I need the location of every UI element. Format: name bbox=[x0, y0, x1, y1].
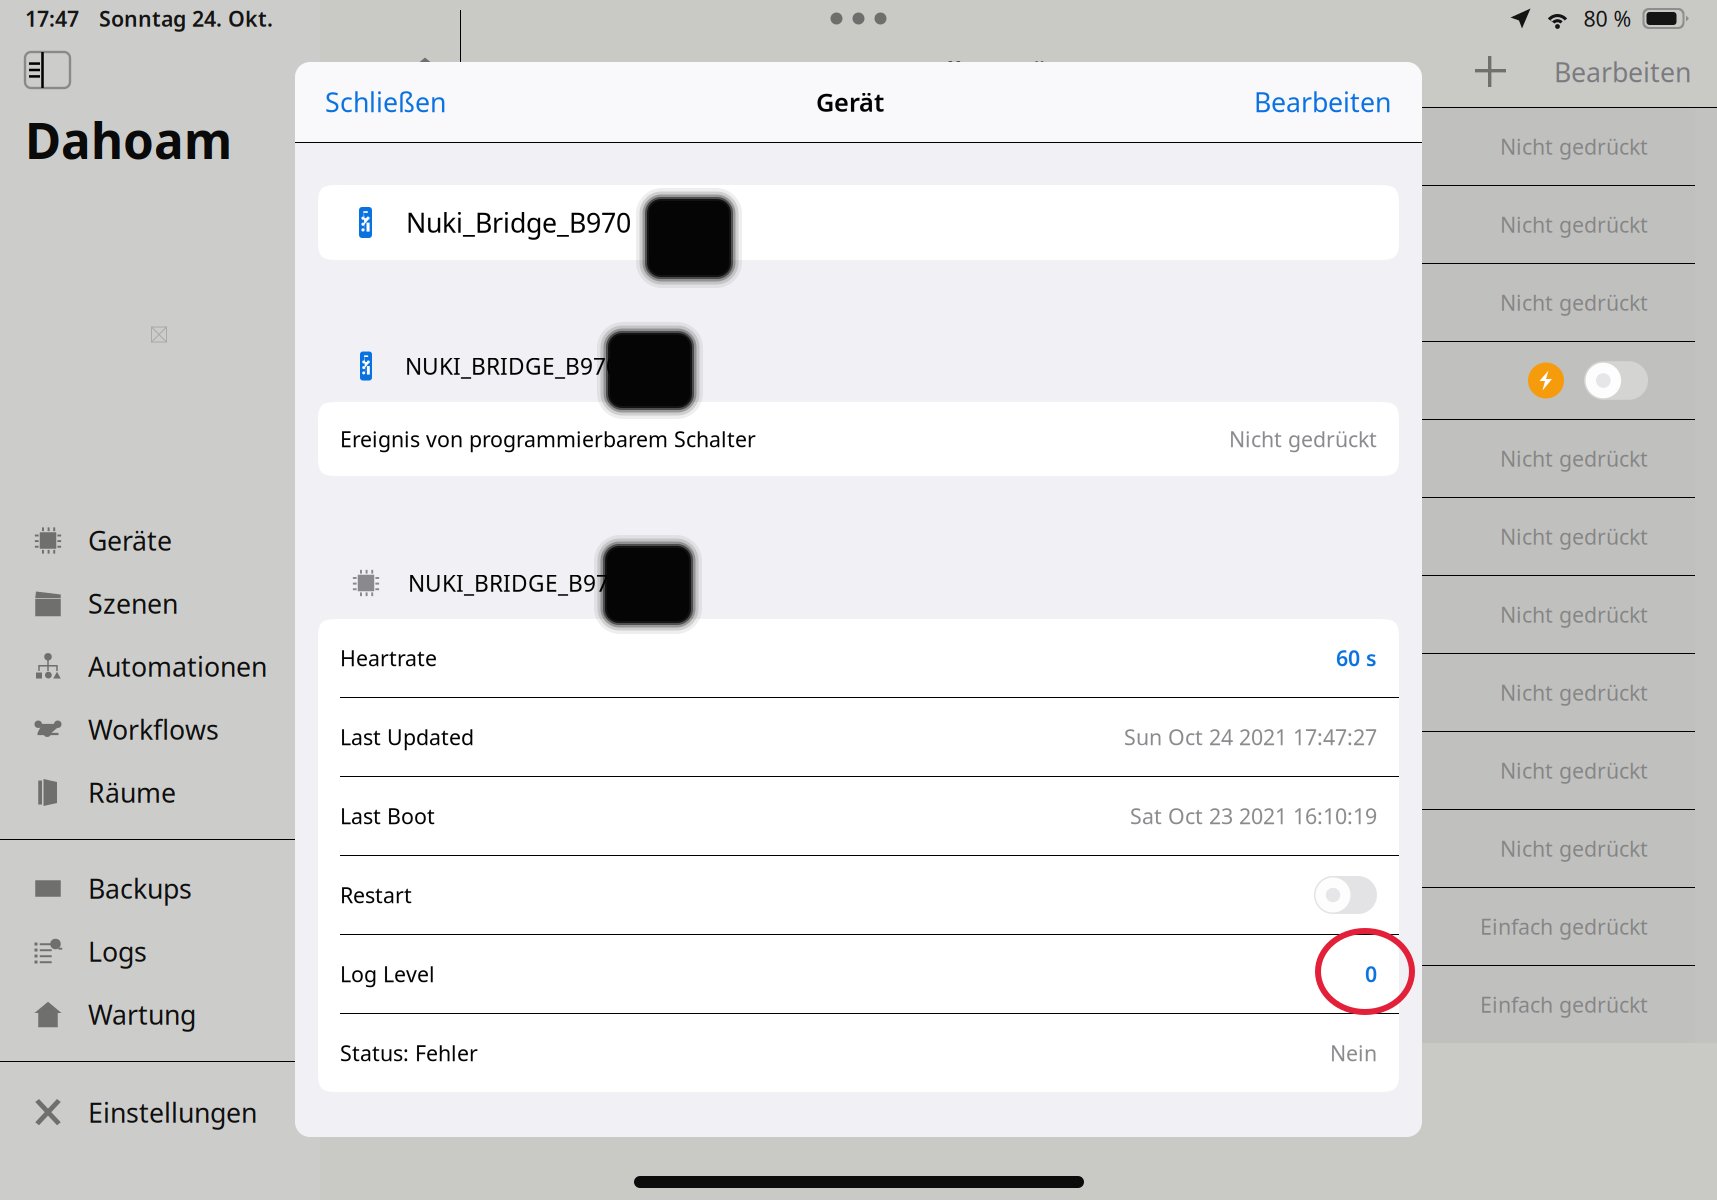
staticText: Nicht gedrückt bbox=[1500, 288, 1648, 317]
staticText: Räume bbox=[88, 775, 176, 810]
button[interactable]: Schließen bbox=[295, 62, 470, 142]
staticText: Bearbeiten bbox=[1254, 84, 1391, 120]
button[interactable]: Workflows bbox=[0, 698, 320, 761]
staticText: Sonntag 24. Okt. bbox=[99, 4, 273, 33]
button[interactable]: Ereignis von programmierbarem Schalter bbox=[318, 402, 1399, 476]
button[interactable]: Last Updated bbox=[318, 698, 1399, 776]
button[interactable]: Last Boot bbox=[318, 777, 1399, 855]
staticText: Nicht gedrückt bbox=[1500, 210, 1648, 239]
button[interactable]: Log Level bbox=[318, 935, 1399, 1013]
button[interactable]: Ordner bbox=[442, 55, 529, 89]
button[interactable]: Gerät hinzufügen bbox=[1474, 55, 1508, 89]
staticText: Geräte bbox=[88, 523, 172, 558]
staticText: NUKI_BRIDGE_B970A bbox=[405, 351, 633, 381]
button[interactable]: Backups bbox=[0, 857, 320, 920]
button[interactable]: Bearbeiten bbox=[1230, 62, 1422, 142]
staticText: Einstellungen bbox=[88, 1095, 257, 1130]
staticText: 17:47 bbox=[25, 4, 79, 33]
staticText: Nicht gedrückt bbox=[1500, 132, 1648, 161]
staticText: Nicht gedrückt bbox=[1500, 834, 1648, 863]
staticText: Nuki_Bridge_B970 bbox=[406, 205, 631, 240]
staticText: Sat Oct 23 2021 16:10:19 bbox=[1130, 802, 1377, 830]
staticText: Nicht gedrückt bbox=[1500, 756, 1648, 785]
staticText: Nicht gedrückt bbox=[1500, 678, 1648, 707]
staticText: 0 bbox=[1365, 960, 1377, 988]
button[interactable]: Restart bbox=[318, 856, 1399, 934]
staticText: Nicht gedrückt bbox=[1500, 522, 1648, 551]
button[interactable]: Einstellungen bbox=[0, 1081, 320, 1144]
staticText: Szenen bbox=[88, 586, 178, 621]
button[interactable]: Bearbeiten bbox=[1508, 54, 1717, 90]
button[interactable]: Geräte bbox=[0, 509, 320, 572]
button[interactable]: Wartung bbox=[0, 983, 320, 1046]
staticText: Einfach gedrückt bbox=[1480, 990, 1648, 1019]
staticText: Heartrate bbox=[340, 644, 437, 672]
image bbox=[151, 326, 167, 342]
staticText: Nicht gedrückt bbox=[1500, 600, 1648, 629]
staticText: Nein bbox=[1330, 1039, 1377, 1067]
staticText: Bearbeiten bbox=[1554, 54, 1691, 90]
button[interactable]: Zuhause bbox=[320, 55, 442, 89]
staticText: Gerät bbox=[816, 85, 884, 119]
staticText: Last Boot bbox=[340, 802, 435, 830]
staticText: Restart bbox=[340, 881, 412, 909]
staticText: NUKI_BRIDGE_B970AF0 bbox=[408, 568, 661, 598]
staticText: 60 s bbox=[1336, 644, 1377, 672]
staticText: Nicht gedrückt bbox=[1229, 425, 1377, 453]
staticText: Alle Geräte bbox=[928, 54, 1074, 90]
staticText: Last Updated bbox=[340, 723, 474, 751]
staticText: Workflows bbox=[88, 712, 219, 747]
button[interactable]: Räume bbox=[0, 761, 320, 824]
staticText: Ereignis von programmierbarem Schalter bbox=[340, 425, 756, 453]
staticText: Logs bbox=[88, 934, 147, 969]
button[interactable]: Heartrate bbox=[318, 619, 1399, 697]
button[interactable]: Szenen bbox=[0, 572, 320, 635]
button[interactable]: Automationen bbox=[0, 635, 320, 698]
staticText: Automationen bbox=[88, 649, 267, 684]
staticText: 80 % bbox=[1583, 4, 1631, 33]
staticText: Dahoam bbox=[25, 107, 232, 172]
button[interactable]: Status: Fehler bbox=[318, 1014, 1399, 1092]
staticText: Einfach gedrückt bbox=[1480, 912, 1648, 941]
button[interactable]: Seitenleiste ein- oder ausblenden bbox=[25, 52, 70, 88]
staticText: Nicht gedrückt bbox=[1500, 444, 1648, 473]
staticText: Sun Oct 24 2021 17:47:27 bbox=[1124, 723, 1377, 751]
staticText: Status: Fehler bbox=[340, 1039, 478, 1067]
staticText: Backups bbox=[88, 871, 192, 906]
staticText: Wartung bbox=[88, 997, 196, 1032]
staticText: Schließen bbox=[325, 84, 446, 120]
staticText: Log Level bbox=[340, 960, 435, 988]
button[interactable]: Logs bbox=[0, 920, 320, 983]
